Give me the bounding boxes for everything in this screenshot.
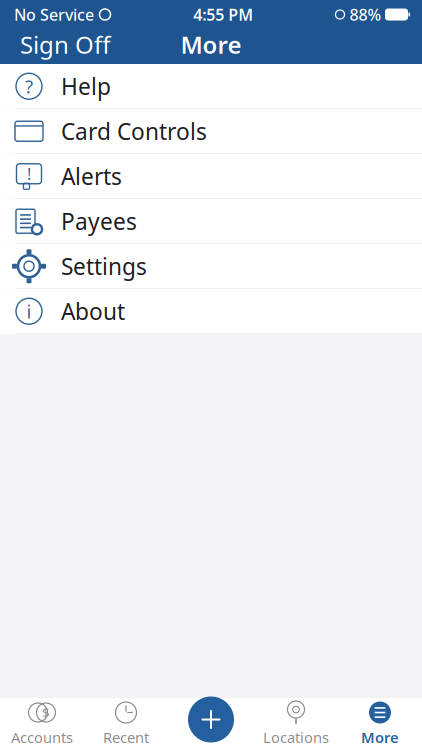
button[interactable]: ! [0,154,422,199]
staticText: Payees [61,206,137,236]
staticText: Alerts [61,161,122,191]
staticText: Locations [263,727,329,747]
staticText: ? [25,74,33,99]
staticText: About [61,296,125,326]
button[interactable]: Card Controls [0,109,422,154]
staticText: $ [42,704,50,721]
button[interactable]: Locations [254,697,338,750]
staticText: Recent [103,727,149,747]
staticText: Card Controls [61,116,207,146]
staticText: No Service [14,4,94,25]
staticText: i [26,299,31,324]
button[interactable]: Recent [84,697,168,750]
button[interactable]: $ [0,697,84,750]
button[interactable]: Settings [0,244,422,289]
button[interactable]: ? [0,64,422,109]
staticText: More [361,727,399,747]
button[interactable]: Sign Off [0,21,111,68]
staticText: Accounts [11,727,73,747]
staticText: 88% [349,4,381,25]
button[interactable]: Payees [0,199,422,244]
staticText: Sign Off [20,29,111,60]
staticText: More [180,29,241,60]
staticText: Help [61,71,111,101]
staticText: 4:55 PM [193,4,253,25]
button[interactable]: Add [188,696,234,742]
button[interactable]: More [338,697,422,750]
staticText: ! [27,163,31,184]
button[interactable]: i [0,289,422,334]
staticText: Settings [61,251,147,281]
